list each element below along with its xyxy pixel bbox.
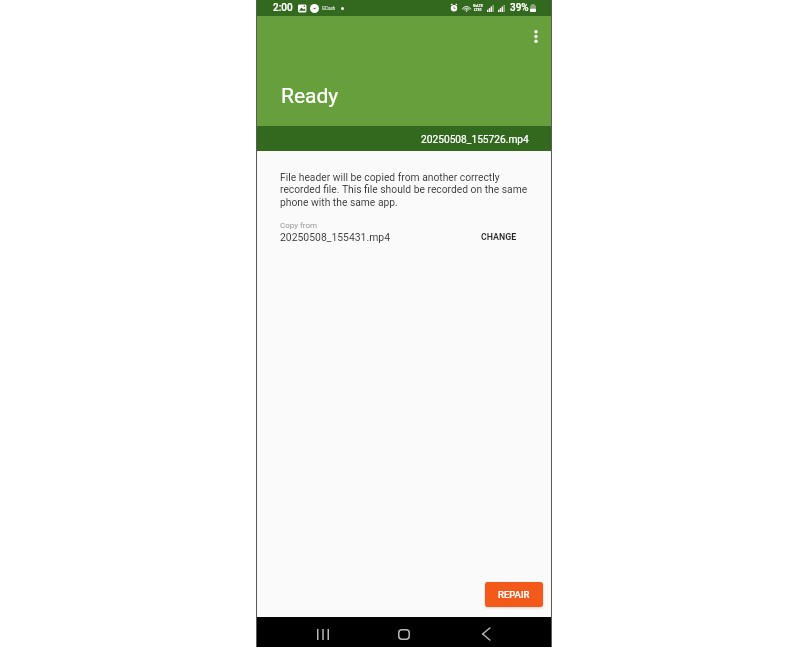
staticText: REPAIR [498, 589, 530, 600]
staticText: 20250508_155726.mp4 [421, 134, 529, 146]
button[interactable]: More options [520, 21, 552, 53]
staticText: File header will be copied from another … [280, 171, 534, 209]
staticText: VoLTE [473, 4, 483, 8]
staticText: 2:00 [273, 2, 293, 14]
button[interactable]: Copy from [256, 221, 552, 243]
button[interactable]: Back [471, 621, 501, 647]
staticText: 39% [510, 2, 529, 14]
staticText: CHANGE [481, 232, 517, 242]
staticText: LTE1 [474, 8, 482, 12]
button[interactable]: Recent apps [308, 621, 338, 647]
staticText: Ready [281, 84, 339, 109]
staticText: GCash [322, 6, 336, 11]
staticText: Copy from [280, 221, 317, 230]
button[interactable]: Home [389, 621, 419, 647]
button[interactable]: REPAIR [485, 582, 543, 607]
staticText: 20250508_155431.mp4 [280, 231, 390, 243]
